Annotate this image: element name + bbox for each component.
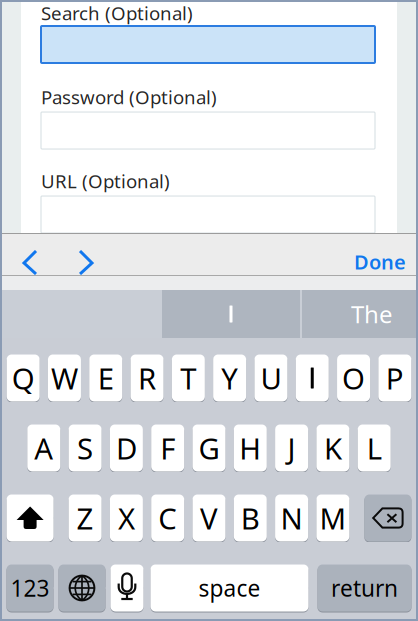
button[interactable]: Previous field bbox=[13, 234, 69, 275]
button[interactable]: Q bbox=[7, 354, 40, 402]
button[interactable]: 123 bbox=[6, 564, 53, 612]
button[interactable]: J bbox=[275, 424, 308, 472]
button[interactable]: F bbox=[151, 424, 184, 472]
button[interactable]: D bbox=[110, 424, 143, 472]
staticText: U bbox=[260, 358, 281, 397]
staticText: space bbox=[198, 573, 260, 603]
button[interactable]: E bbox=[89, 354, 122, 402]
staticText: URL (Optional) bbox=[41, 169, 170, 193]
button[interactable]: M bbox=[316, 494, 349, 542]
button[interactable]: W bbox=[48, 354, 81, 402]
staticText: X bbox=[118, 498, 135, 537]
button[interactable]: Done bbox=[354, 234, 416, 275]
staticText: K bbox=[324, 428, 342, 467]
staticText: D bbox=[116, 428, 137, 467]
button[interactable]: H bbox=[234, 424, 267, 472]
button[interactable]: Next field bbox=[69, 234, 115, 275]
button[interactable]: O bbox=[337, 354, 370, 402]
staticText: A bbox=[34, 428, 53, 467]
button[interactable]: Y bbox=[213, 354, 246, 402]
staticText: Z bbox=[77, 498, 94, 537]
button[interactable]: Next keyboard bbox=[58, 564, 105, 612]
staticText: F bbox=[160, 428, 175, 467]
staticText: N bbox=[281, 498, 303, 537]
staticText: return bbox=[331, 573, 398, 603]
button[interactable]: space bbox=[150, 564, 308, 612]
staticText: O bbox=[342, 358, 365, 397]
staticText: Q bbox=[12, 358, 35, 397]
button[interactable]: The bbox=[302, 290, 416, 338]
button[interactable]: G bbox=[192, 424, 225, 472]
button[interactable]: L bbox=[358, 424, 391, 472]
button[interactable]: C bbox=[151, 494, 184, 542]
button[interactable]: A bbox=[27, 424, 60, 472]
button[interactable] bbox=[162, 290, 300, 338]
staticText: E bbox=[98, 358, 114, 397]
staticText: J bbox=[288, 428, 296, 467]
button[interactable]: S bbox=[69, 424, 102, 472]
staticText: Y bbox=[221, 358, 238, 397]
staticText: W bbox=[51, 358, 78, 397]
staticText: C bbox=[158, 498, 177, 537]
staticText: B bbox=[241, 498, 260, 537]
button[interactable]: X bbox=[110, 494, 143, 542]
staticText: The bbox=[351, 298, 393, 330]
button[interactable]: Dictate bbox=[110, 564, 143, 612]
staticText: Password (Optional) bbox=[41, 85, 217, 109]
button[interactable]: K bbox=[316, 424, 349, 472]
button[interactable]: Z bbox=[69, 494, 102, 542]
staticText: V bbox=[200, 498, 218, 537]
staticText: G bbox=[198, 428, 219, 467]
staticText: H bbox=[239, 428, 261, 467]
staticText: Done bbox=[354, 248, 406, 275]
staticText: R bbox=[138, 358, 156, 397]
button[interactable]: P bbox=[378, 354, 411, 402]
button[interactable]: T bbox=[172, 354, 205, 402]
staticText: Search (Optional) bbox=[41, 1, 193, 25]
staticText: P bbox=[386, 358, 404, 397]
button[interactable]: B bbox=[234, 494, 267, 542]
staticText: 123 bbox=[10, 573, 49, 603]
button[interactable]: V bbox=[192, 494, 225, 542]
staticText: S bbox=[77, 428, 93, 467]
staticText: M bbox=[319, 498, 346, 537]
button[interactable]: Shift bbox=[7, 494, 54, 542]
button[interactable]: Delete bbox=[364, 494, 411, 542]
button[interactable]: return bbox=[317, 564, 411, 612]
button[interactable] bbox=[296, 354, 329, 402]
button[interactable]: N bbox=[275, 494, 308, 542]
button[interactable]: R bbox=[131, 354, 164, 402]
staticText: T bbox=[180, 358, 196, 397]
staticText: L bbox=[367, 428, 382, 467]
button[interactable]: U bbox=[254, 354, 287, 402]
